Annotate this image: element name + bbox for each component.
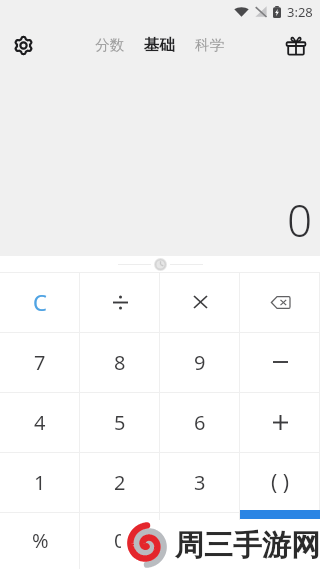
staticText: 5 — [114, 409, 126, 436]
staticText: 3:28 — [287, 3, 313, 21]
staticText: 周三手游网 — [175, 527, 320, 564]
staticText: 基础 — [144, 35, 175, 55]
staticText: 0 — [287, 190, 313, 250]
button[interactable]: Plus — [240, 392, 320, 452]
button[interactable]: 1 — [0, 452, 80, 512]
staticText: . — [197, 527, 203, 554]
button[interactable]: Divide — [80, 272, 160, 332]
staticText: 6 — [194, 409, 206, 436]
staticText: 8 — [114, 349, 126, 376]
button[interactable]: 2 — [80, 452, 160, 512]
button[interactable]: Minus — [240, 332, 320, 392]
button[interactable]: 分数 — [91, 29, 128, 61]
staticText: C — [33, 287, 47, 317]
staticText: 3 — [194, 469, 206, 496]
button[interactable]: 0 — [80, 512, 160, 569]
button[interactable]: Multiply — [160, 272, 240, 332]
button[interactable]: 5 — [80, 392, 160, 452]
staticText: 科学 — [195, 36, 224, 54]
button[interactable]: Parentheses — [240, 452, 320, 512]
button[interactable]: 科学 — [191, 29, 228, 61]
button[interactable]: 3 — [160, 452, 240, 512]
button[interactable]: 基础 — [140, 28, 179, 62]
staticText: ( ) — [271, 468, 290, 497]
button[interactable]: Gift — [278, 27, 314, 63]
button[interactable]: Backspace — [240, 272, 320, 332]
staticText: 1 — [34, 469, 46, 496]
button[interactable]: History — [0, 256, 320, 272]
button[interactable]: Settings — [5, 27, 41, 63]
staticText: 2 — [114, 469, 126, 496]
staticText: 0 — [114, 527, 126, 554]
button[interactable]: 9 — [160, 332, 240, 392]
button[interactable]: 7 — [0, 332, 80, 392]
staticText: % — [32, 527, 49, 554]
staticText: 分数 — [95, 36, 124, 54]
button[interactable]: 4 — [0, 392, 80, 452]
button[interactable]: Percent — [0, 512, 80, 569]
button[interactable]: Decimal point — [160, 512, 240, 569]
staticText: 9 — [194, 349, 206, 376]
button[interactable]: 8 — [80, 332, 160, 392]
staticText: 7 — [34, 349, 46, 376]
button[interactable]: Clear — [0, 272, 80, 332]
staticText: 4 — [34, 409, 46, 436]
button[interactable]: Equals — [240, 512, 320, 569]
button[interactable]: 6 — [160, 392, 240, 452]
